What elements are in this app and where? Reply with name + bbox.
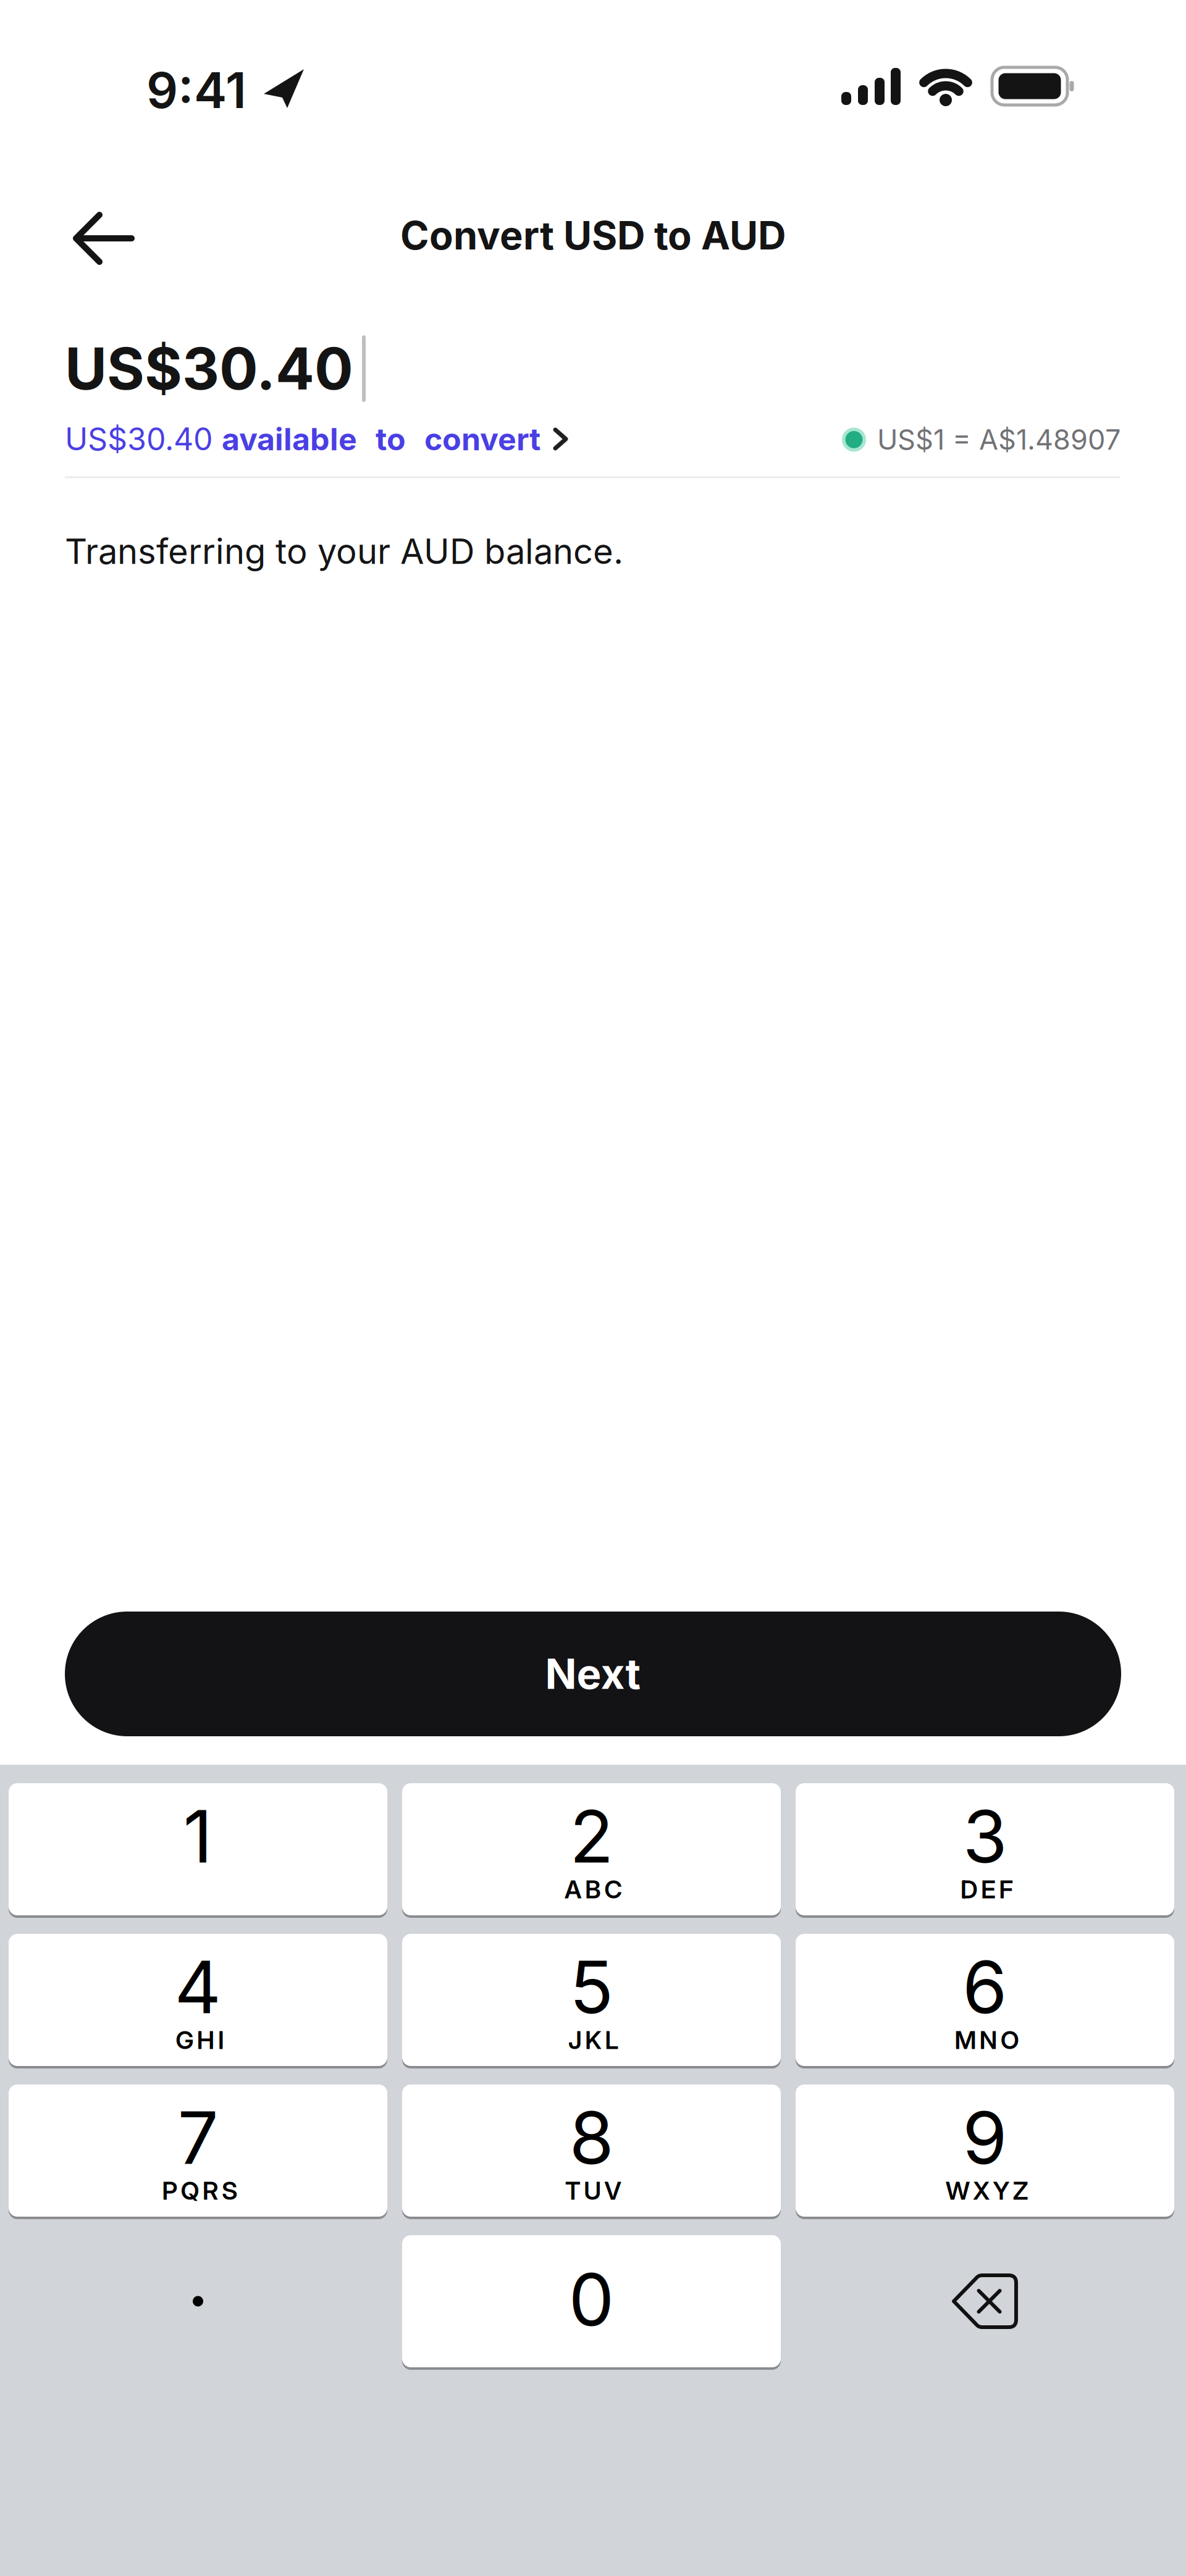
staticText: 4: [175, 1943, 221, 2031]
button[interactable]: 6: [796, 1934, 1174, 2066]
staticText: 7: [178, 2094, 218, 2181]
button[interactable]: Back: [70, 214, 138, 263]
staticText: TUV: [565, 2176, 622, 2206]
staticText: US$30.40: [65, 420, 222, 458]
button[interactable]: 5: [402, 1934, 781, 2066]
staticText: to: [376, 420, 406, 458]
button[interactable]: 3: [796, 1783, 1174, 1915]
staticText: 9: [962, 2094, 1007, 2181]
button[interactable]: 1: [9, 1783, 387, 1915]
staticText: 9:41: [146, 60, 246, 120]
staticText: GHI: [176, 2025, 224, 2055]
staticText: DEF: [960, 1874, 1013, 1904]
staticText: 8: [569, 2094, 614, 2181]
button[interactable]: US$30.40: [65, 420, 573, 458]
button[interactable]: 9: [796, 2085, 1174, 2217]
staticText: Next: [545, 1649, 641, 1699]
button[interactable]: 4: [9, 1934, 387, 2066]
button[interactable]: 7: [9, 2085, 387, 2217]
staticText: 3: [963, 1793, 1007, 1880]
staticText: JKL: [568, 2025, 619, 2055]
button[interactable]: Delete: [796, 2235, 1174, 2367]
button[interactable]: Next: [65, 1612, 1121, 1736]
staticText: ABC: [564, 1874, 622, 1904]
staticText: US$1 = A$1.48907: [877, 423, 1121, 456]
staticText: available: [222, 420, 357, 458]
staticText: 2: [570, 1793, 613, 1880]
button[interactable]: 8: [402, 2085, 781, 2217]
staticText: 6: [962, 1943, 1007, 2031]
button[interactable]: Decimal point: [9, 2235, 387, 2367]
staticText: 5: [570, 1943, 613, 2031]
staticText: Transferring to your AUD balance.: [65, 530, 623, 572]
button[interactable]: 0: [402, 2235, 781, 2367]
staticText: MNO: [954, 2025, 1019, 2055]
staticText: Convert USD to AUD: [400, 212, 786, 259]
staticText: PQRS: [162, 2176, 238, 2206]
staticText: 1: [183, 1793, 213, 1880]
button[interactable]: 2: [402, 1783, 781, 1915]
staticText: US$30.40: [65, 334, 353, 403]
staticText: WXYZ: [945, 2176, 1028, 2206]
staticText: 0: [569, 2256, 614, 2343]
staticText: convert: [424, 420, 540, 458]
